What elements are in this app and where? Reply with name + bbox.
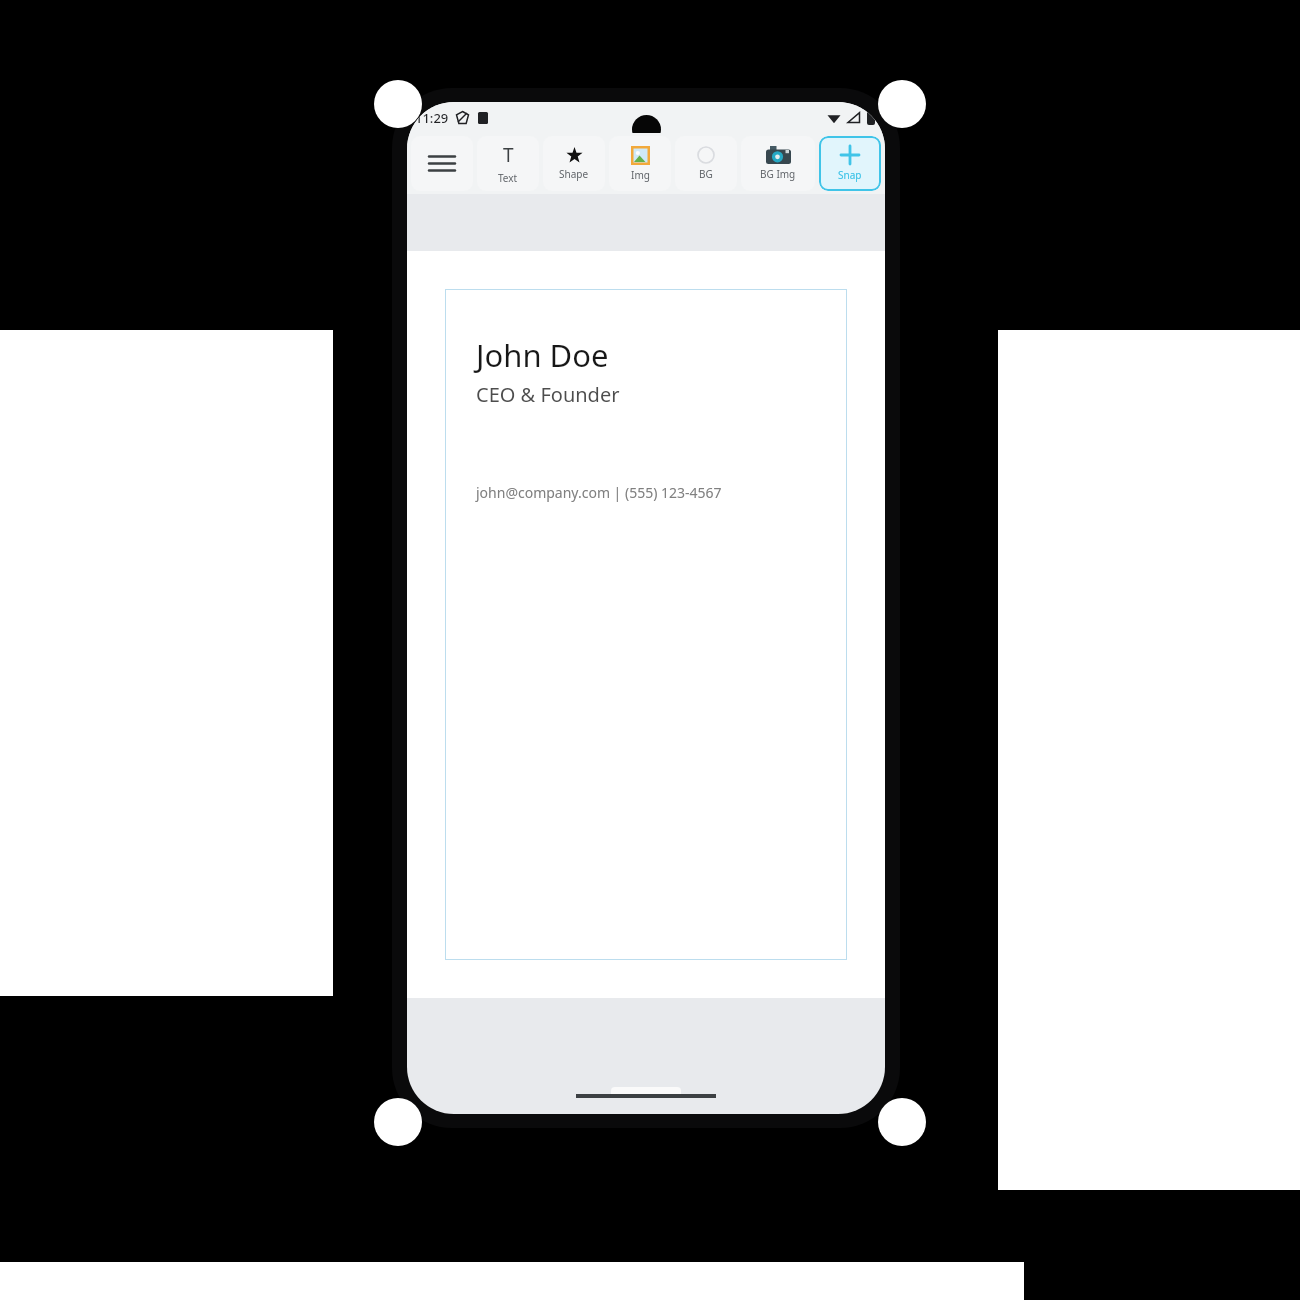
staticText: Snap <box>838 168 862 182</box>
button[interactable]: Snap <box>819 136 881 191</box>
staticText: Text <box>498 171 518 185</box>
button[interactable]: Menu <box>411 136 473 191</box>
button[interactable]: BG Img <box>741 136 815 191</box>
staticText: John Doe <box>476 334 609 376</box>
button[interactable]: BG <box>675 136 737 191</box>
staticText: BG Img <box>760 167 796 181</box>
staticText: Img <box>631 168 650 182</box>
staticText: Shape <box>559 167 589 181</box>
button[interactable]: Img <box>609 136 671 191</box>
staticText: CEO & Founder <box>476 381 620 408</box>
button[interactable]: John Doe <box>445 289 847 960</box>
staticText: john@company.com | (555) 123-4567 <box>476 483 722 502</box>
staticText: T <box>503 142 514 168</box>
button[interactable]: T <box>477 136 539 191</box>
staticText: 11:29 <box>415 109 449 127</box>
button[interactable]: Shape <box>543 136 605 191</box>
staticText: BG <box>699 167 713 181</box>
